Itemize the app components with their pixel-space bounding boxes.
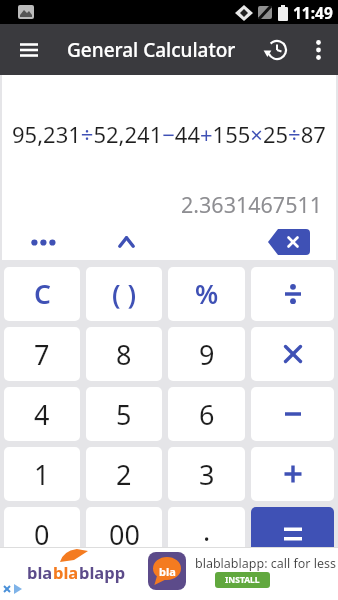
staticText: bla [159,564,176,579]
button[interactable]: . [168,507,245,561]
staticText: % [195,276,219,312]
staticText: 00 [109,516,140,553]
button[interactable]: ( ) [86,267,162,321]
staticText: 1 [34,456,50,493]
staticText: INSTALL [225,574,260,586]
button[interactable]: 3 [168,447,245,501]
button[interactable]: 2 [86,447,162,501]
button[interactable] [251,327,334,381]
button[interactable]: bla [0,547,338,600]
button[interactable] [252,224,336,260]
button[interactable]: 1 [4,447,80,501]
staticText: 95,231÷52,241−44+155×25÷87 [12,119,326,149]
button[interactable]: 5 [86,387,162,441]
button[interactable] [298,30,338,70]
staticText: 9 [199,336,215,373]
staticText: bla [53,561,79,583]
button[interactable] [5,26,53,74]
staticText: 3 [199,456,215,493]
button[interactable]: 00 [86,507,162,561]
staticText: ( ) [112,276,137,312]
staticText: . [203,512,211,549]
staticText: 11:49 [293,2,333,23]
button[interactable] [254,28,298,72]
button[interactable] [251,267,334,321]
button[interactable] [85,224,168,260]
staticText: 2.3631467511 [181,190,323,219]
button[interactable] [251,447,334,501]
staticText: General Calculator [67,37,254,63]
button[interactable]: 4 [4,387,80,441]
button[interactable] [2,224,85,260]
staticText: 8 [116,336,132,373]
button[interactable]: 9 [168,327,245,381]
staticText: blapp [79,561,126,583]
staticText: blablablapp: call for less [195,555,336,572]
button[interactable]: INSTALL [215,572,270,588]
staticText: 0 [34,516,50,553]
staticText: 7 [34,336,50,373]
button[interactable]: 0 [4,507,80,561]
button[interactable]: 8 [86,327,162,381]
button[interactable]: C [4,267,80,321]
staticText: 4 [34,396,50,433]
button[interactable] [251,387,334,441]
button[interactable] [251,507,334,561]
staticText: 6 [199,396,215,433]
button[interactable]: 6 [168,387,245,441]
button[interactable]: 7 [4,327,80,381]
staticText: 2 [116,456,132,493]
staticText: 5 [116,396,132,433]
staticText: bla [27,561,53,583]
staticText: C [34,276,51,312]
button[interactable]: % [168,267,245,321]
